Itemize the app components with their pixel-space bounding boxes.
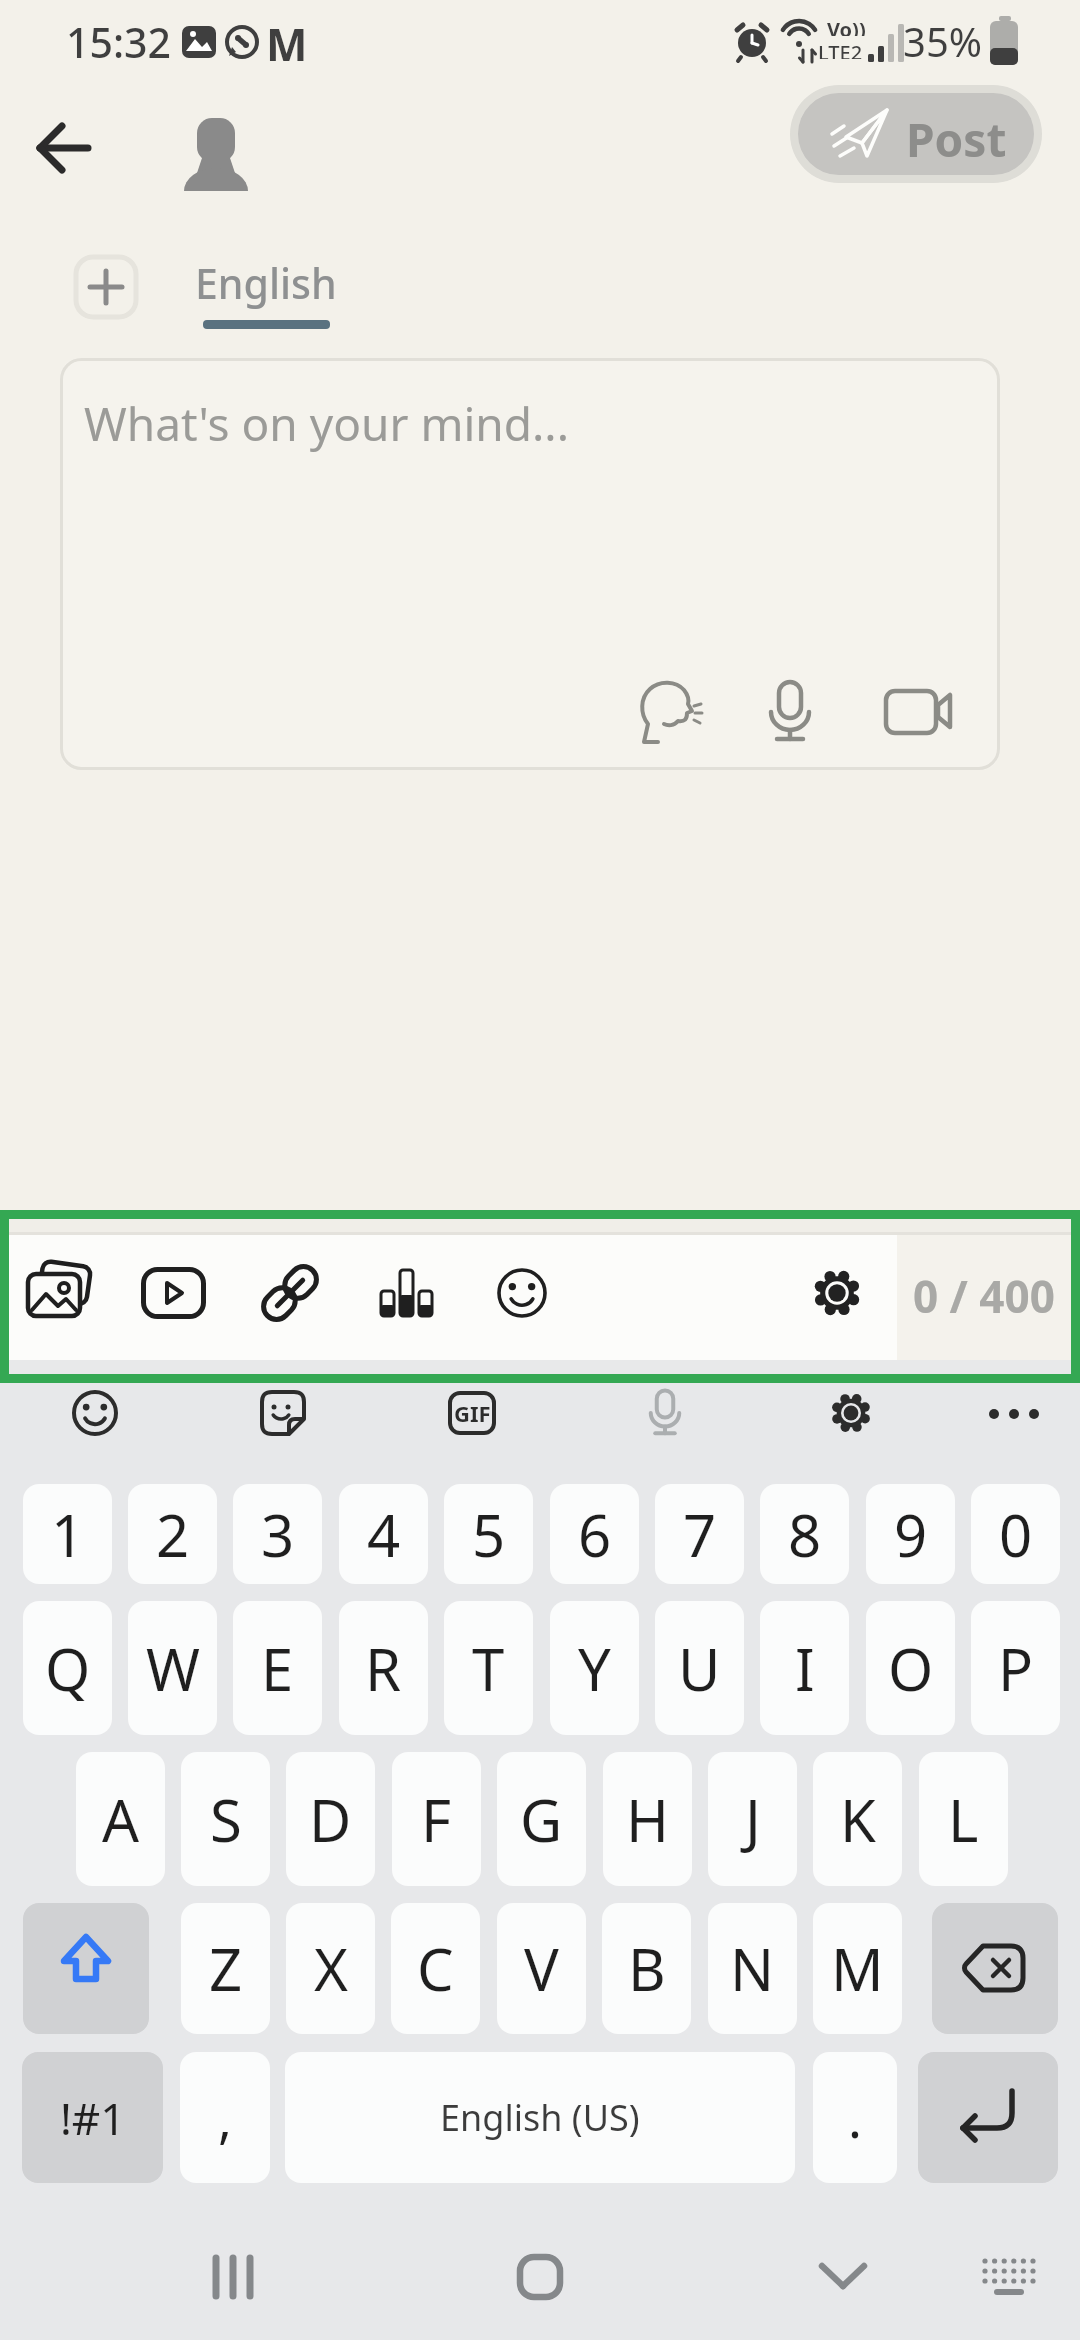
button[interactable]: E: [233, 1601, 322, 1735]
staticText: 6: [578, 1495, 612, 1574]
staticText: ,: [218, 2082, 232, 2153]
staticText: R: [365, 1629, 402, 1708]
button[interactable]: I: [760, 1601, 849, 1735]
button[interactable]: 4: [339, 1484, 428, 1584]
staticText: A: [102, 1780, 140, 1859]
button[interactable]: [36, 118, 96, 178]
staticText: E: [261, 1629, 294, 1708]
button[interactable]: V: [497, 1903, 586, 2034]
staticText: 4: [367, 1495, 401, 1574]
button[interactable]: U: [655, 1601, 744, 1735]
button[interactable]: 5: [444, 1484, 533, 1584]
staticText: 0: [999, 1495, 1033, 1574]
staticText: GIF: [454, 1398, 491, 1428]
staticText: What's on your mind...: [84, 392, 569, 452]
staticText: 1: [51, 1495, 85, 1574]
staticText: W: [146, 1629, 200, 1708]
staticText: 3: [261, 1495, 295, 1574]
button[interactable]: [184, 112, 248, 196]
staticText: 9: [894, 1495, 928, 1574]
button[interactable]: A: [76, 1752, 165, 1886]
staticText: C: [417, 1929, 454, 2008]
button[interactable]: [494, 1265, 550, 1321]
staticText: LTE2: [818, 39, 863, 59]
button[interactable]: [806, 1262, 868, 1324]
button[interactable]: [988, 1408, 1040, 1420]
button[interactable]: [259, 1263, 321, 1323]
button[interactable]: 9: [866, 1484, 955, 1584]
staticText: J: [745, 1780, 761, 1859]
button[interactable]: [73, 254, 139, 320]
button[interactable]: N: [708, 1903, 797, 2034]
button[interactable]: W: [128, 1601, 217, 1735]
button[interactable]: 3: [233, 1484, 322, 1584]
staticText: Y: [578, 1629, 611, 1708]
staticText: 15:32: [66, 14, 171, 66]
button[interactable]: 2: [128, 1484, 217, 1584]
staticText: D: [309, 1780, 352, 1859]
button[interactable]: !#1: [22, 2052, 163, 2183]
button[interactable]: F: [392, 1752, 481, 1886]
staticText: M: [266, 14, 308, 66]
staticText: Post: [906, 108, 1007, 160]
button[interactable]: [918, 2052, 1058, 2183]
staticText: K: [840, 1780, 876, 1859]
button[interactable]: Z: [181, 1903, 270, 2034]
button[interactable]: P: [971, 1601, 1060, 1735]
button[interactable]: M: [813, 1903, 902, 2034]
staticText: Z: [209, 1929, 243, 2008]
button[interactable]: R: [339, 1601, 428, 1735]
button[interactable]: T: [444, 1601, 533, 1735]
button[interactable]: [26, 1262, 90, 1324]
staticText: English: [195, 255, 337, 311]
button[interactable]: 7: [655, 1484, 744, 1584]
button[interactable]: English: [190, 255, 342, 311]
staticText: S: [210, 1780, 242, 1859]
button[interactable]: 6: [550, 1484, 639, 1584]
staticText: O: [888, 1629, 934, 1708]
button[interactable]: [932, 1903, 1058, 2034]
button[interactable]: ,: [180, 2052, 270, 2183]
button[interactable]: 1: [23, 1484, 112, 1584]
button[interactable]: [980, 2256, 1040, 2300]
button[interactable]: English (US): [285, 2052, 795, 2183]
button[interactable]: O: [866, 1601, 955, 1735]
button[interactable]: Y: [550, 1601, 639, 1735]
button[interactable]: X: [286, 1903, 375, 2034]
button[interactable]: [517, 2254, 563, 2300]
staticText: 35%: [903, 14, 982, 66]
button[interactable]: J: [708, 1752, 797, 1886]
button[interactable]: .: [813, 2052, 897, 2183]
button[interactable]: [827, 1389, 875, 1437]
button[interactable]: [71, 1389, 119, 1437]
button[interactable]: S: [181, 1752, 270, 1886]
button[interactable]: K: [813, 1752, 902, 1886]
button[interactable]: Q: [23, 1601, 112, 1735]
button[interactable]: C: [391, 1903, 480, 2034]
staticText: G: [520, 1780, 563, 1859]
button[interactable]: [60, 358, 1000, 770]
button[interactable]: B: [602, 1903, 691, 2034]
button[interactable]: D: [286, 1752, 375, 1886]
button[interactable]: 8: [760, 1484, 849, 1584]
button[interactable]: [141, 1267, 207, 1319]
staticText: English (US): [440, 2093, 640, 2142]
button[interactable]: [818, 2260, 868, 2294]
button[interactable]: [210, 2254, 260, 2300]
staticText: P: [998, 1629, 1034, 1708]
button[interactable]: [798, 93, 1034, 175]
button[interactable]: H: [603, 1752, 692, 1886]
staticText: X: [314, 1929, 348, 2008]
staticText: 5: [472, 1495, 506, 1574]
button[interactable]: [643, 1387, 687, 1439]
button[interactable]: [378, 1268, 434, 1318]
button[interactable]: [259, 1389, 307, 1437]
button[interactable]: 0: [971, 1484, 1060, 1584]
staticText: T: [472, 1629, 505, 1708]
staticText: U: [678, 1629, 721, 1708]
button[interactable]: [23, 1903, 149, 2034]
staticText: F: [421, 1780, 452, 1859]
button[interactable]: [448, 1391, 496, 1435]
button[interactable]: G: [497, 1752, 586, 1886]
button[interactable]: L: [919, 1752, 1008, 1886]
